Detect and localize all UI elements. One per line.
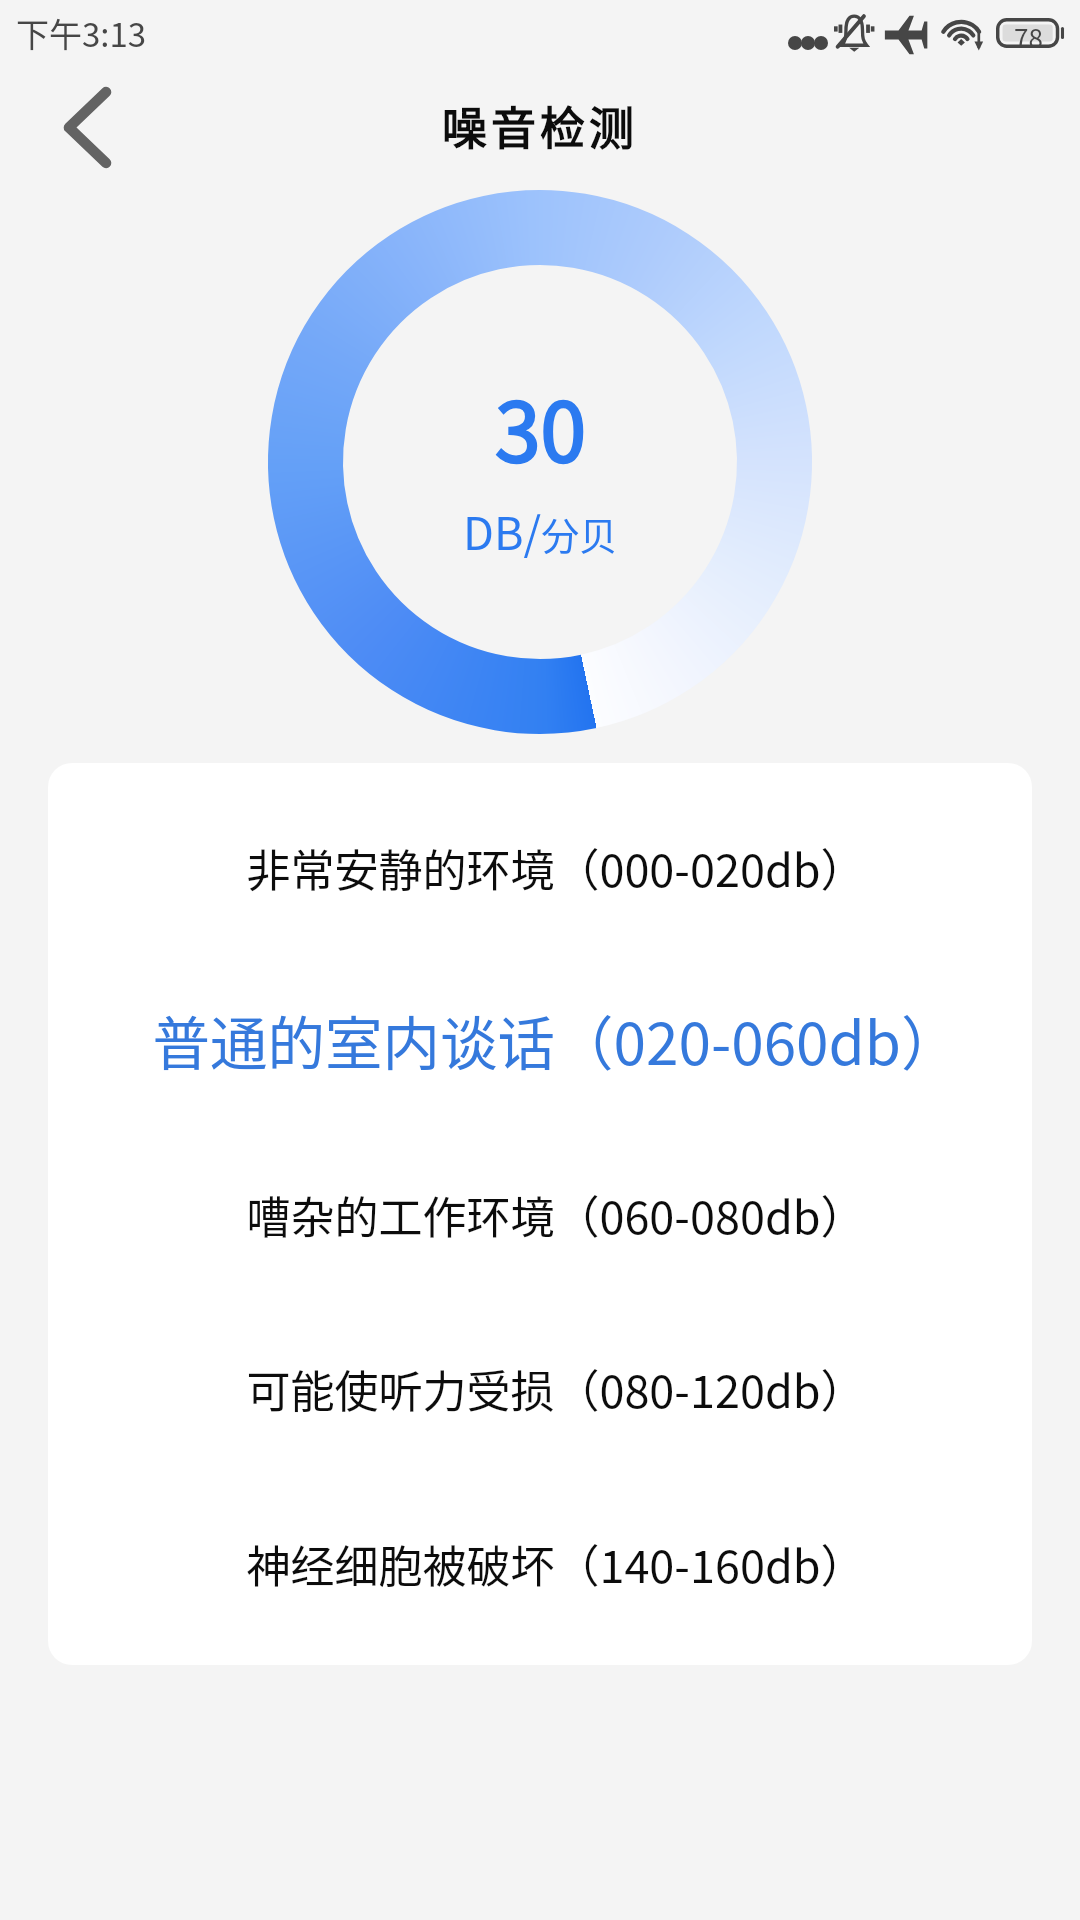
staticText: 30 bbox=[495, 367, 587, 486]
button[interactable]: 普通的室内谈话（020-060db） bbox=[48, 989, 1032, 1089]
button[interactable]: Back bbox=[40, 84, 134, 170]
button[interactable]: 可能使听力受损（080-120db） bbox=[48, 1345, 1032, 1431]
button[interactable]: 嘈杂的工作环境（060-080db） bbox=[48, 1171, 1032, 1257]
staticText: 噪音检测 bbox=[0, 93, 1080, 158]
staticText: 下午3:13 bbox=[16, 9, 147, 57]
staticText: 嘈杂的工作环境（060-080db） bbox=[246, 1182, 866, 1247]
button[interactable]: 非常安静的环境（000-020db） bbox=[48, 824, 1032, 910]
button[interactable]: 神经细胞被破坏（140-160db） bbox=[48, 1520, 1032, 1606]
staticText: 可能使听力受损（080-120db） bbox=[246, 1356, 866, 1421]
staticText: 78 bbox=[1014, 18, 1043, 48]
staticText: 非常安静的环境（000-020db） bbox=[246, 835, 866, 900]
staticText: 普通的室内谈话（020-060db） bbox=[152, 997, 960, 1082]
staticText: DB/分贝 bbox=[463, 498, 618, 563]
staticText: 神经细胞被破坏（140-160db） bbox=[246, 1531, 866, 1596]
